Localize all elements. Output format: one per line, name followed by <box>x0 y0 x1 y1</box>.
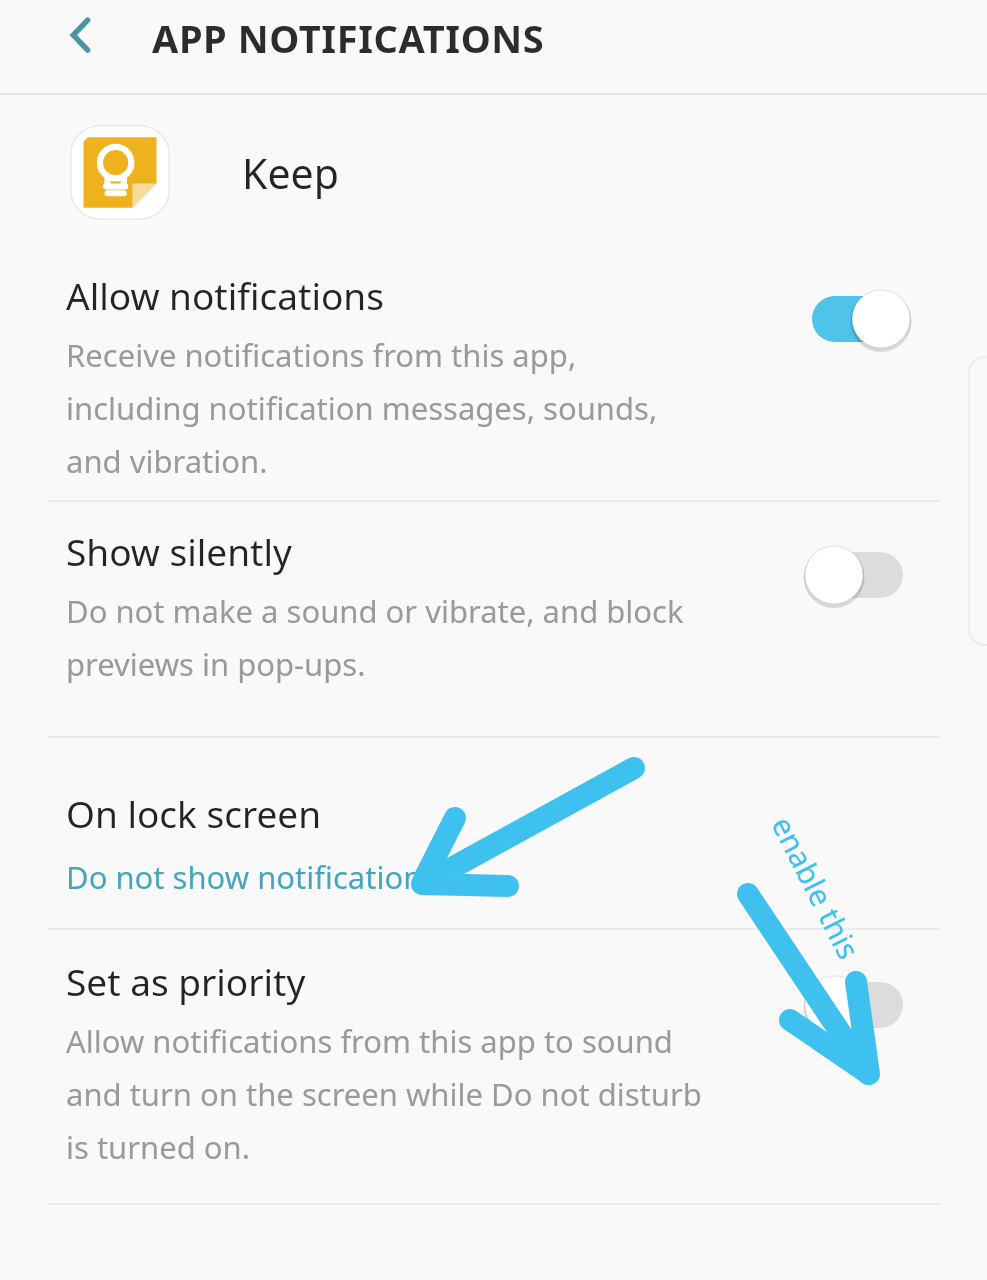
staticText: On lock screen <box>66 788 322 838</box>
button[interactable]: Keep <box>0 95 987 250</box>
staticText: Set as priority <box>66 956 306 1006</box>
button[interactable]: Set as priority <box>0 930 987 1203</box>
staticText: APP NOTIFICATIONS <box>152 12 545 64</box>
staticText: Do not make a sound or vibrate, and bloc… <box>66 590 684 632</box>
button[interactable]: Show silently <box>0 502 987 736</box>
button[interactable]: Back <box>52 6 108 62</box>
staticText: Allow notifications <box>66 270 384 320</box>
staticText: Allow notifications from this app to sou… <box>66 1020 673 1062</box>
staticText: Keep <box>242 145 339 201</box>
button[interactable]: Allow notifications <box>0 250 987 500</box>
button[interactable]: Allow notifications on <box>806 288 910 350</box>
staticText: and vibration. <box>66 440 268 482</box>
staticText: and turn on the screen while Do not dist… <box>66 1073 702 1115</box>
staticText: Do not show notifications <box>66 856 438 898</box>
staticText: Show silently <box>66 526 292 576</box>
staticText: previews in pop-ups. <box>66 643 366 685</box>
staticText: is turned on. <box>66 1126 251 1168</box>
staticText: including notification messages, sounds, <box>66 387 658 429</box>
button[interactable]: Set as priority off <box>806 974 910 1036</box>
staticText: enable this <box>763 809 870 966</box>
button[interactable]: On lock screen <box>0 738 987 928</box>
button[interactable]: Show silently off <box>806 544 910 606</box>
staticText: Receive notifications from this app, <box>66 334 577 376</box>
